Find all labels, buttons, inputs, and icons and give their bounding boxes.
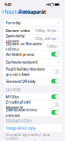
staticText: Zpomalený záznam bbox=[6, 33, 25, 44]
staticText: Zachovat nastavení bbox=[6, 59, 38, 65]
staticText: Fotografické styly umožňují vybrat si vi… bbox=[6, 133, 50, 141]
button[interactable]: Skenovat QR kódy bbox=[3, 77, 62, 85]
staticText: 1080p bbox=[47, 44, 57, 49]
staticText: Skenovat QR kódy bbox=[6, 78, 36, 84]
button[interactable]: Vertikální provoz bbox=[3, 50, 62, 58]
staticText: Vertikální provoz bbox=[6, 51, 35, 57]
button[interactable]: Zobrazovat mimo snímání bbox=[3, 108, 62, 116]
staticText: 1080p, 30 fps bbox=[35, 28, 57, 33]
button[interactable]: Nastavení bbox=[0, 7, 32, 16]
staticText: Fotoaparát bbox=[19, 8, 46, 15]
staticText: Zobrazovat mimo snímání bbox=[6, 107, 37, 118]
staticText: FOTOGRAFICKÉ STYLY bbox=[6, 120, 33, 123]
staticText: Nastavení bbox=[5, 8, 30, 15]
staticText: Formáty bbox=[6, 20, 21, 25]
staticText: Záznam ve filmovém režimu bbox=[6, 41, 43, 51]
staticText: 9:41 bbox=[4, 2, 11, 7]
button[interactable]: Zachovat nastavení bbox=[3, 58, 62, 66]
staticText: ZACHYCENÍ bbox=[6, 88, 21, 92]
button[interactable]: Fotografické styly bbox=[3, 124, 62, 132]
staticText: Záznam videa bbox=[6, 28, 30, 33]
button[interactable]: Mřížka bbox=[3, 93, 62, 100]
staticText: Zrcadlit přední fotoaparát bbox=[6, 99, 31, 110]
button[interactable]: Zpomalený záznam bbox=[3, 34, 62, 42]
button[interactable]: Záznam videa bbox=[3, 26, 62, 34]
staticText: Použít tlačítko hlasitosti pro sérii fot… bbox=[6, 66, 45, 77]
staticText: 720p, 240 fps bbox=[35, 36, 57, 41]
button[interactable]: Zrcadlit přední fotoaparát bbox=[3, 100, 62, 108]
staticText: Fotografické styly bbox=[6, 125, 36, 131]
staticText: Mřížka bbox=[6, 94, 19, 99]
button[interactable]: Formáty bbox=[3, 19, 62, 26]
button[interactable]: Záznam ve filmovém režimu bbox=[3, 42, 62, 50]
button[interactable]: Použít tlačítko hlasitosti pro sérii fot… bbox=[3, 66, 62, 77]
